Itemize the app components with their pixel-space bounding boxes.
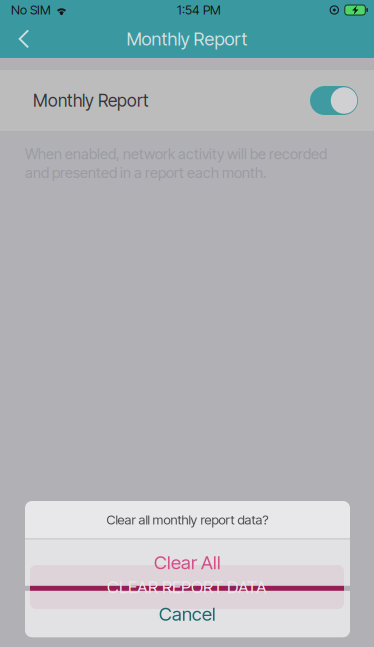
button[interactable]: Back xyxy=(0,20,48,58)
button[interactable]: Monthly Report xyxy=(0,69,374,132)
staticText: and presented in a report each month. xyxy=(25,164,266,181)
staticText: No SIM xyxy=(11,2,51,18)
staticText: Cancel xyxy=(159,603,216,625)
button[interactable]: Clear All xyxy=(25,539,350,586)
staticText: 1:54 PM xyxy=(177,2,221,18)
staticText: When enabled, network activity will be r… xyxy=(25,145,327,163)
button[interactable]: CLEAR REPORT DATA xyxy=(30,565,344,609)
staticText: Clear All xyxy=(154,551,221,574)
staticText: CLEAR REPORT DATA xyxy=(107,577,267,597)
staticText: Clear all monthly report data? xyxy=(106,512,268,528)
staticText: Monthly Report xyxy=(126,28,247,50)
button[interactable]: Cancel xyxy=(25,591,350,637)
staticText: Monthly Report xyxy=(33,90,148,111)
